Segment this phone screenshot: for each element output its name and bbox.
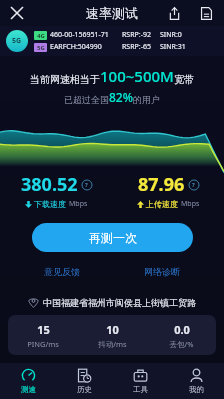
staticText: 0.0 [174, 322, 190, 337]
staticText: 意见反馈 [44, 266, 80, 277]
button[interactable]: Close [4, 0, 30, 26]
button[interactable]: Info 上传速度 [188, 179, 199, 190]
staticText: Mbps [181, 199, 200, 209]
staticText: RSRP:-92 [122, 30, 160, 40]
staticText: 历史 [77, 385, 92, 394]
staticText: 5G [37, 44, 45, 52]
button[interactable]: 意见反馈 [40, 262, 84, 281]
staticText: 100~500M [100, 66, 174, 86]
staticText: 我的 [189, 385, 204, 394]
button[interactable]: 网络诊断 [140, 262, 184, 281]
staticText: 460-00-156951-71 [50, 30, 122, 40]
staticText: SINR:31 [160, 42, 186, 52]
staticText: 网络诊断 [144, 266, 180, 277]
button[interactable]: 中国福建省福州市闽侯县上街镇工贸路 [0, 297, 224, 308]
staticText: 380.52 [21, 172, 78, 197]
button[interactable]: Share [162, 1, 186, 25]
staticText: 87.96 [138, 172, 185, 197]
staticText: 82% [109, 89, 133, 105]
staticText: Mbps [69, 199, 88, 209]
staticText: 当前网速相当于 [30, 73, 100, 86]
staticText: 的用户 [133, 94, 160, 105]
staticText: ? [192, 181, 195, 189]
staticText: 5G [12, 36, 22, 46]
button[interactable]: 我的 [168, 363, 224, 399]
staticText: 再测一次 [89, 230, 137, 245]
staticText: 宽带 [174, 73, 194, 86]
button[interactable]: 再测一次 [32, 223, 193, 252]
staticText: 抖动/ms [98, 339, 127, 349]
staticText: ? [85, 181, 88, 189]
staticText: EARFCH:504990 [50, 42, 122, 52]
button[interactable]: 历史 [56, 363, 112, 399]
staticText: 丢包/% [169, 339, 194, 349]
staticText: RSRP:-65 [122, 42, 160, 52]
staticText: 15 [37, 322, 50, 337]
staticText: 10 [106, 322, 119, 337]
button[interactable]: 测速 [0, 363, 56, 399]
staticText: 工具 [133, 385, 148, 394]
staticText: 下载速度 [34, 199, 66, 209]
staticText: 上传速度 [146, 199, 178, 209]
button[interactable]: Info 下载速度 [81, 179, 92, 190]
staticText: 速率测试 [86, 5, 138, 21]
button[interactable]: 工具 [112, 363, 168, 399]
staticText: 测速 [21, 385, 36, 394]
button[interactable]: Report [194, 1, 218, 25]
staticText: 4G [37, 32, 45, 40]
staticText: SINR:0 [160, 30, 182, 40]
staticText: PING/ms [27, 339, 59, 349]
staticText: 中国福建省福州市闽侯县上街镇工贸路 [43, 297, 196, 308]
staticText: 已超过全国 [64, 94, 109, 105]
